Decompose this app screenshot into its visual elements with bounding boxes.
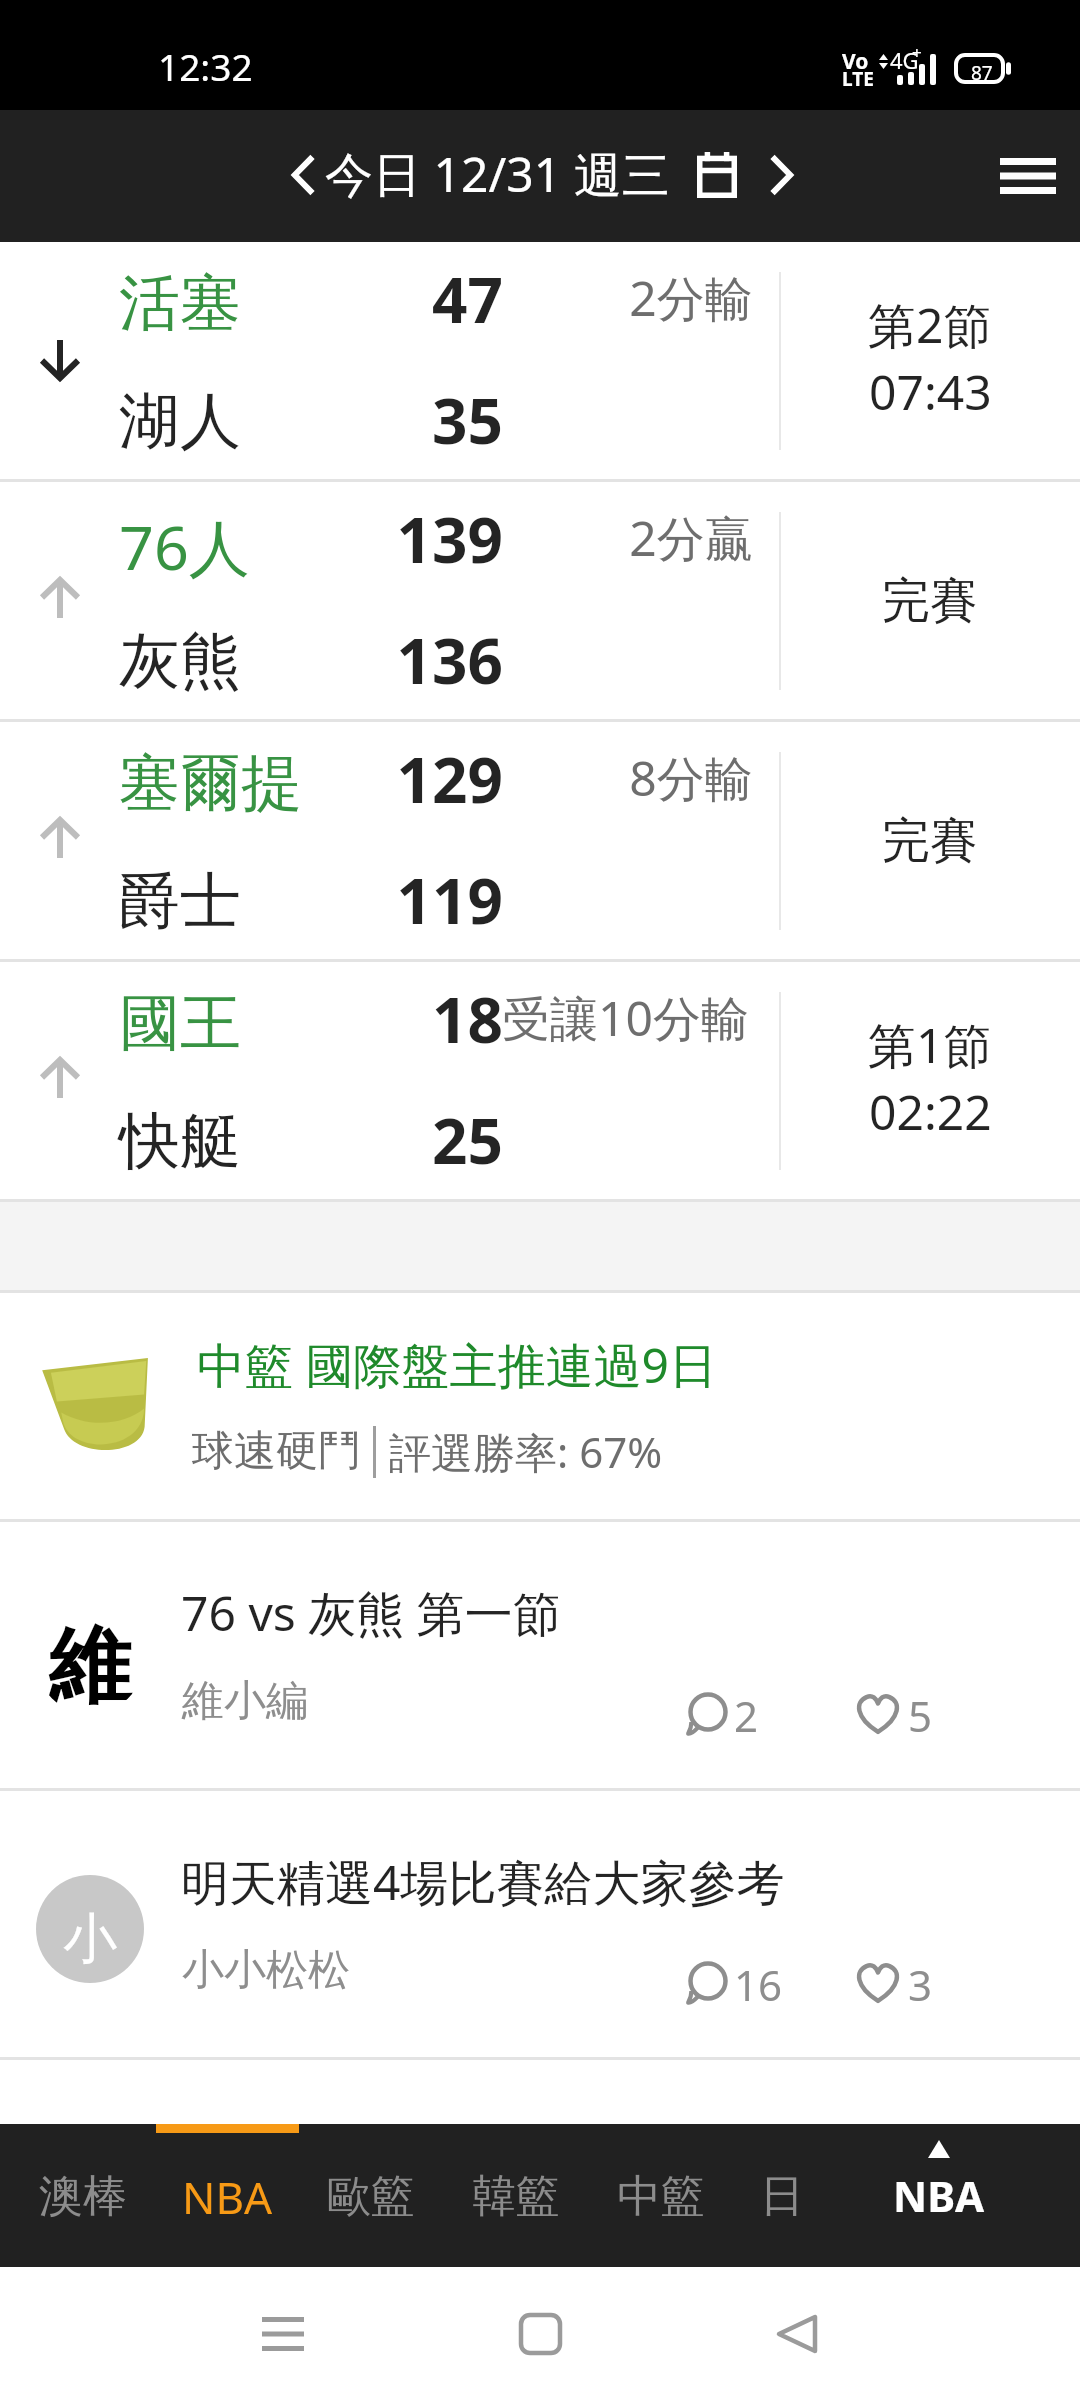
- staticText: 小小松松: [182, 1944, 350, 1997]
- button[interactable]: NBA: [823, 2124, 1058, 2267]
- staticText: NBA: [182, 2167, 273, 2227]
- staticText: 4G: [890, 45, 919, 75]
- staticText: 澳棒: [39, 2169, 127, 2224]
- staticText: 受讓10分輸: [502, 985, 749, 1051]
- staticText: 第2節: [868, 292, 992, 358]
- staticText: 2分輸: [566, 265, 816, 331]
- staticText: 完賽: [882, 811, 978, 871]
- button[interactable]: 76人: [0, 482, 1080, 722]
- button[interactable]: Home: [485, 2279, 595, 2389]
- button[interactable]: NBA: [156, 2124, 299, 2267]
- staticText: 爵士: [119, 863, 241, 940]
- staticText: 韓籃: [472, 2169, 560, 2224]
- staticText: +: [912, 41, 922, 64]
- staticText: 76人: [119, 505, 250, 588]
- staticText: 119: [303, 858, 503, 942]
- staticText: 明天精選4場比賽給大家參考: [181, 1849, 785, 1915]
- staticText: 12:32: [158, 41, 253, 91]
- button[interactable]: 維: [0, 1521, 1080, 1788]
- button[interactable]: 中籃 國際盤主推連過9日: [0, 1293, 1080, 1521]
- button[interactable]: Next day: [752, 110, 808, 242]
- staticText: 47: [303, 257, 503, 341]
- staticText: 維: [48, 1614, 132, 1714]
- button[interactable]: Recent apps: [228, 2279, 338, 2389]
- staticText: 灰熊: [119, 623, 241, 700]
- staticText: 活塞: [119, 265, 241, 342]
- staticText: 02:22: [869, 1079, 992, 1144]
- staticText: 第1節: [868, 1012, 992, 1078]
- staticText: 小: [63, 1905, 117, 1973]
- staticText: 快艇: [119, 1103, 241, 1180]
- staticText: 5: [908, 1687, 933, 1744]
- button[interactable]: Previous day: [274, 110, 324, 242]
- staticText: Vo: [842, 47, 869, 76]
- staticText: 今日 12/31 週三: [325, 141, 670, 207]
- button[interactable]: 國王: [0, 962, 1080, 1202]
- staticText: 日: [760, 2169, 804, 2224]
- button[interactable]: 澳棒: [11, 2124, 154, 2267]
- staticText: 歐籃: [327, 2169, 415, 2224]
- staticText: NBA: [893, 2167, 985, 2224]
- staticText: LTE: [842, 66, 874, 92]
- staticText: 139: [303, 497, 503, 581]
- staticText: 湖人: [119, 383, 241, 460]
- button[interactable]: 塞爾提: [0, 722, 1080, 962]
- staticText: 球速硬鬥: [192, 1425, 360, 1478]
- staticText: 中籃: [617, 2169, 705, 2224]
- staticText: 2分贏: [566, 505, 816, 571]
- staticText: 塞爾提: [119, 745, 302, 822]
- staticText: 完賽: [882, 571, 978, 631]
- button[interactable]: 今日 12/31 週三: [324, 110, 744, 242]
- button[interactable]: 活塞: [0, 242, 1080, 482]
- button[interactable]: Back: [742, 2279, 852, 2389]
- staticText: 中籃 國際盤主推連過9日: [197, 1332, 717, 1398]
- staticText: 16: [734, 1956, 783, 2013]
- staticText: 129: [303, 737, 503, 821]
- staticText: 8分輸: [566, 745, 816, 811]
- button[interactable]: 中籃: [589, 2124, 732, 2267]
- button[interactable]: 韓籃: [444, 2124, 587, 2267]
- staticText: 35: [303, 378, 503, 462]
- staticText: 評選勝率: 67%: [389, 1423, 663, 1480]
- staticText: 國王: [119, 985, 241, 1062]
- staticText: 維小編: [182, 1675, 308, 1728]
- button[interactable]: 歐籃: [299, 2124, 442, 2267]
- button[interactable]: Menu: [976, 124, 1080, 228]
- staticText: 76 vs 灰熊 第一節: [181, 1580, 561, 1646]
- staticText: 3: [908, 1956, 933, 2013]
- staticText: 25: [303, 1098, 503, 1182]
- staticText: 2: [734, 1687, 759, 1744]
- staticText: 07:43: [869, 359, 992, 424]
- staticText: 136: [303, 618, 503, 702]
- button[interactable]: 日: [722, 2124, 842, 2267]
- button[interactable]: 小: [0, 1790, 1080, 2057]
- staticText: 87: [971, 60, 993, 86]
- staticText: 18: [303, 977, 503, 1061]
